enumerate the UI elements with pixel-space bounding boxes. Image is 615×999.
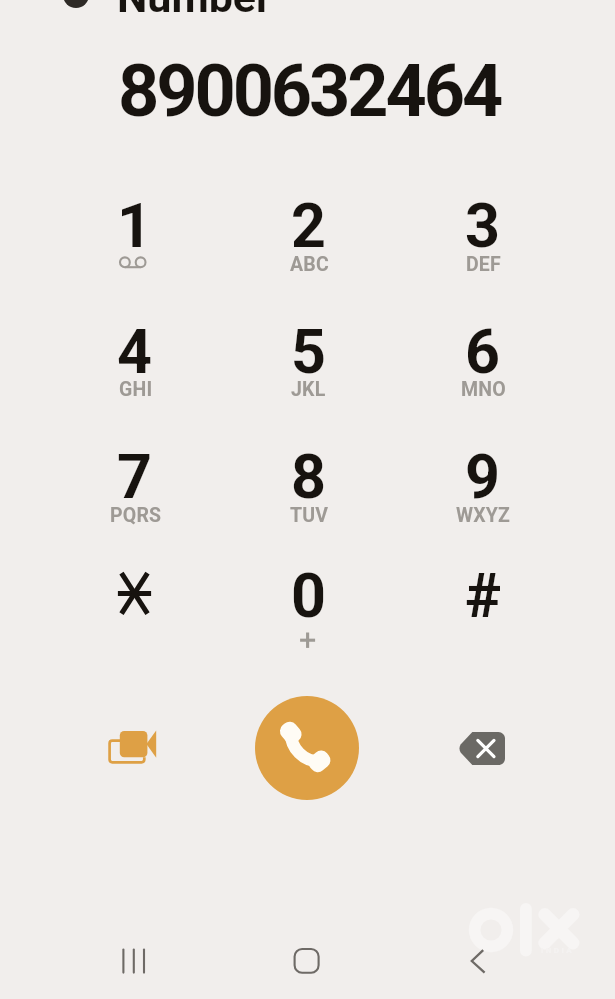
staticText: 5	[291, 316, 326, 387]
staticText: #	[465, 560, 502, 631]
button[interactable]: #	[408, 541, 556, 651]
button[interactable]: 2	[234, 171, 382, 281]
staticText: 6	[465, 316, 500, 387]
staticText: JKL	[291, 378, 326, 401]
button[interactable]: 8	[234, 422, 382, 532]
button[interactable]: 5	[234, 297, 382, 407]
button[interactable]: 7	[60, 422, 208, 532]
button[interactable]: Home	[266, 930, 346, 992]
staticText: 4	[117, 316, 152, 387]
button[interactable]: *	[60, 541, 208, 651]
staticText: TUV	[290, 504, 329, 527]
button[interactable]: 6	[408, 297, 556, 407]
staticText: 7	[117, 441, 152, 512]
staticText: GHI	[119, 378, 153, 401]
staticText: 8900632464	[118, 49, 501, 133]
staticText: 3	[465, 190, 500, 261]
staticText: MNO	[461, 378, 506, 401]
button[interactable]: Video call	[86, 712, 186, 784]
staticText: 9	[465, 441, 500, 512]
button[interactable]: 9	[408, 422, 556, 532]
button[interactable]: Back	[440, 930, 520, 992]
staticText: 0	[291, 560, 326, 631]
staticText: DEF	[466, 253, 501, 276]
button[interactable]: 4	[60, 297, 208, 407]
staticText: 1	[117, 190, 152, 261]
button[interactable]: Call	[255, 696, 359, 800]
staticText: 8	[291, 441, 326, 512]
button[interactable]: 0	[234, 541, 382, 651]
button[interactable]: 1	[60, 171, 208, 281]
button[interactable]: Recent apps	[94, 930, 174, 992]
button[interactable]: Backspace	[444, 712, 520, 784]
staticText: Number	[117, 0, 272, 22]
staticText: 2	[291, 190, 326, 261]
staticText: PQRS	[110, 504, 162, 527]
staticText: ABC	[290, 253, 329, 276]
button[interactable]: 3	[408, 171, 556, 281]
staticText: WXYZ	[456, 504, 511, 527]
